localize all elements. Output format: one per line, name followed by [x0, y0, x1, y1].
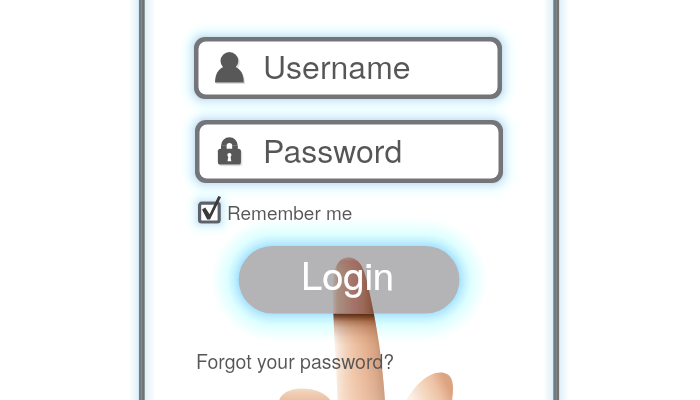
staticText: Remember me	[227, 198, 353, 225]
button[interactable]: Username field	[194, 37, 502, 99]
button[interactable]	[195, 345, 395, 371]
button[interactable]	[239, 246, 460, 314]
staticText: Password	[263, 126, 403, 172]
staticText: Username	[263, 42, 411, 88]
button[interactable]: Password field	[195, 120, 503, 183]
staticText: Login	[301, 246, 394, 300]
staticText: Forgot your password?	[196, 347, 395, 375]
button[interactable]	[197, 197, 355, 225]
